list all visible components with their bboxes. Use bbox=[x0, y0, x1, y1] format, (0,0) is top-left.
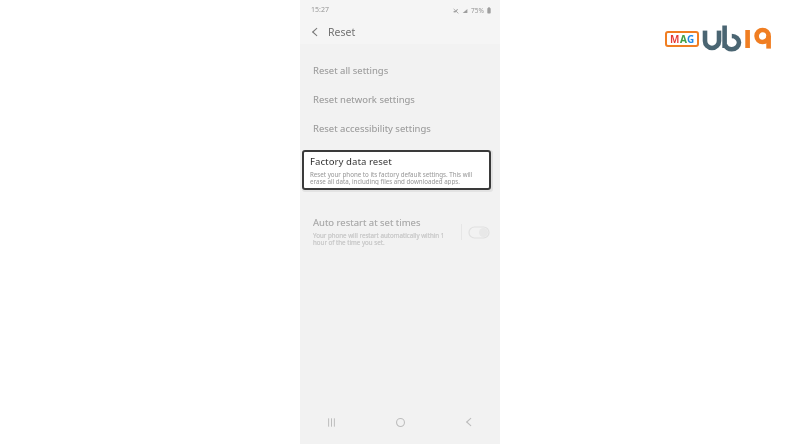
staticText: A bbox=[680, 32, 687, 46]
button[interactable]: Recent apps bbox=[318, 409, 344, 435]
staticText: Your phone will restart automatically wi… bbox=[313, 231, 457, 247]
staticText: 75% bbox=[471, 6, 484, 15]
button[interactable]: Auto restart toggle bbox=[468, 223, 490, 241]
staticText: Reset network settings bbox=[313, 93, 415, 106]
staticText: Reset your phone to its factory default … bbox=[310, 170, 483, 185]
button[interactable]: Home bbox=[387, 409, 413, 435]
button[interactable]: Auto restart at set times bbox=[300, 214, 500, 249]
staticText: Auto restart at set times bbox=[313, 216, 421, 229]
button[interactable]: Reset accessibility settings bbox=[300, 114, 500, 143]
staticText: 15:27 bbox=[311, 5, 329, 15]
staticText: Reset all settings bbox=[313, 64, 389, 77]
button[interactable]: Reset all settings bbox=[300, 56, 500, 85]
staticText: G bbox=[687, 32, 695, 46]
staticText: Reset bbox=[328, 25, 356, 39]
button[interactable]: Back bbox=[306, 23, 324, 41]
button[interactable]: Reset network settings bbox=[300, 85, 500, 114]
staticText: Factory data reset bbox=[310, 155, 392, 168]
staticText: M bbox=[670, 32, 680, 46]
button[interactable]: Back bbox=[456, 409, 482, 435]
staticText: Reset accessibility settings bbox=[313, 122, 431, 135]
button[interactable]: Factory data reset bbox=[302, 150, 491, 190]
